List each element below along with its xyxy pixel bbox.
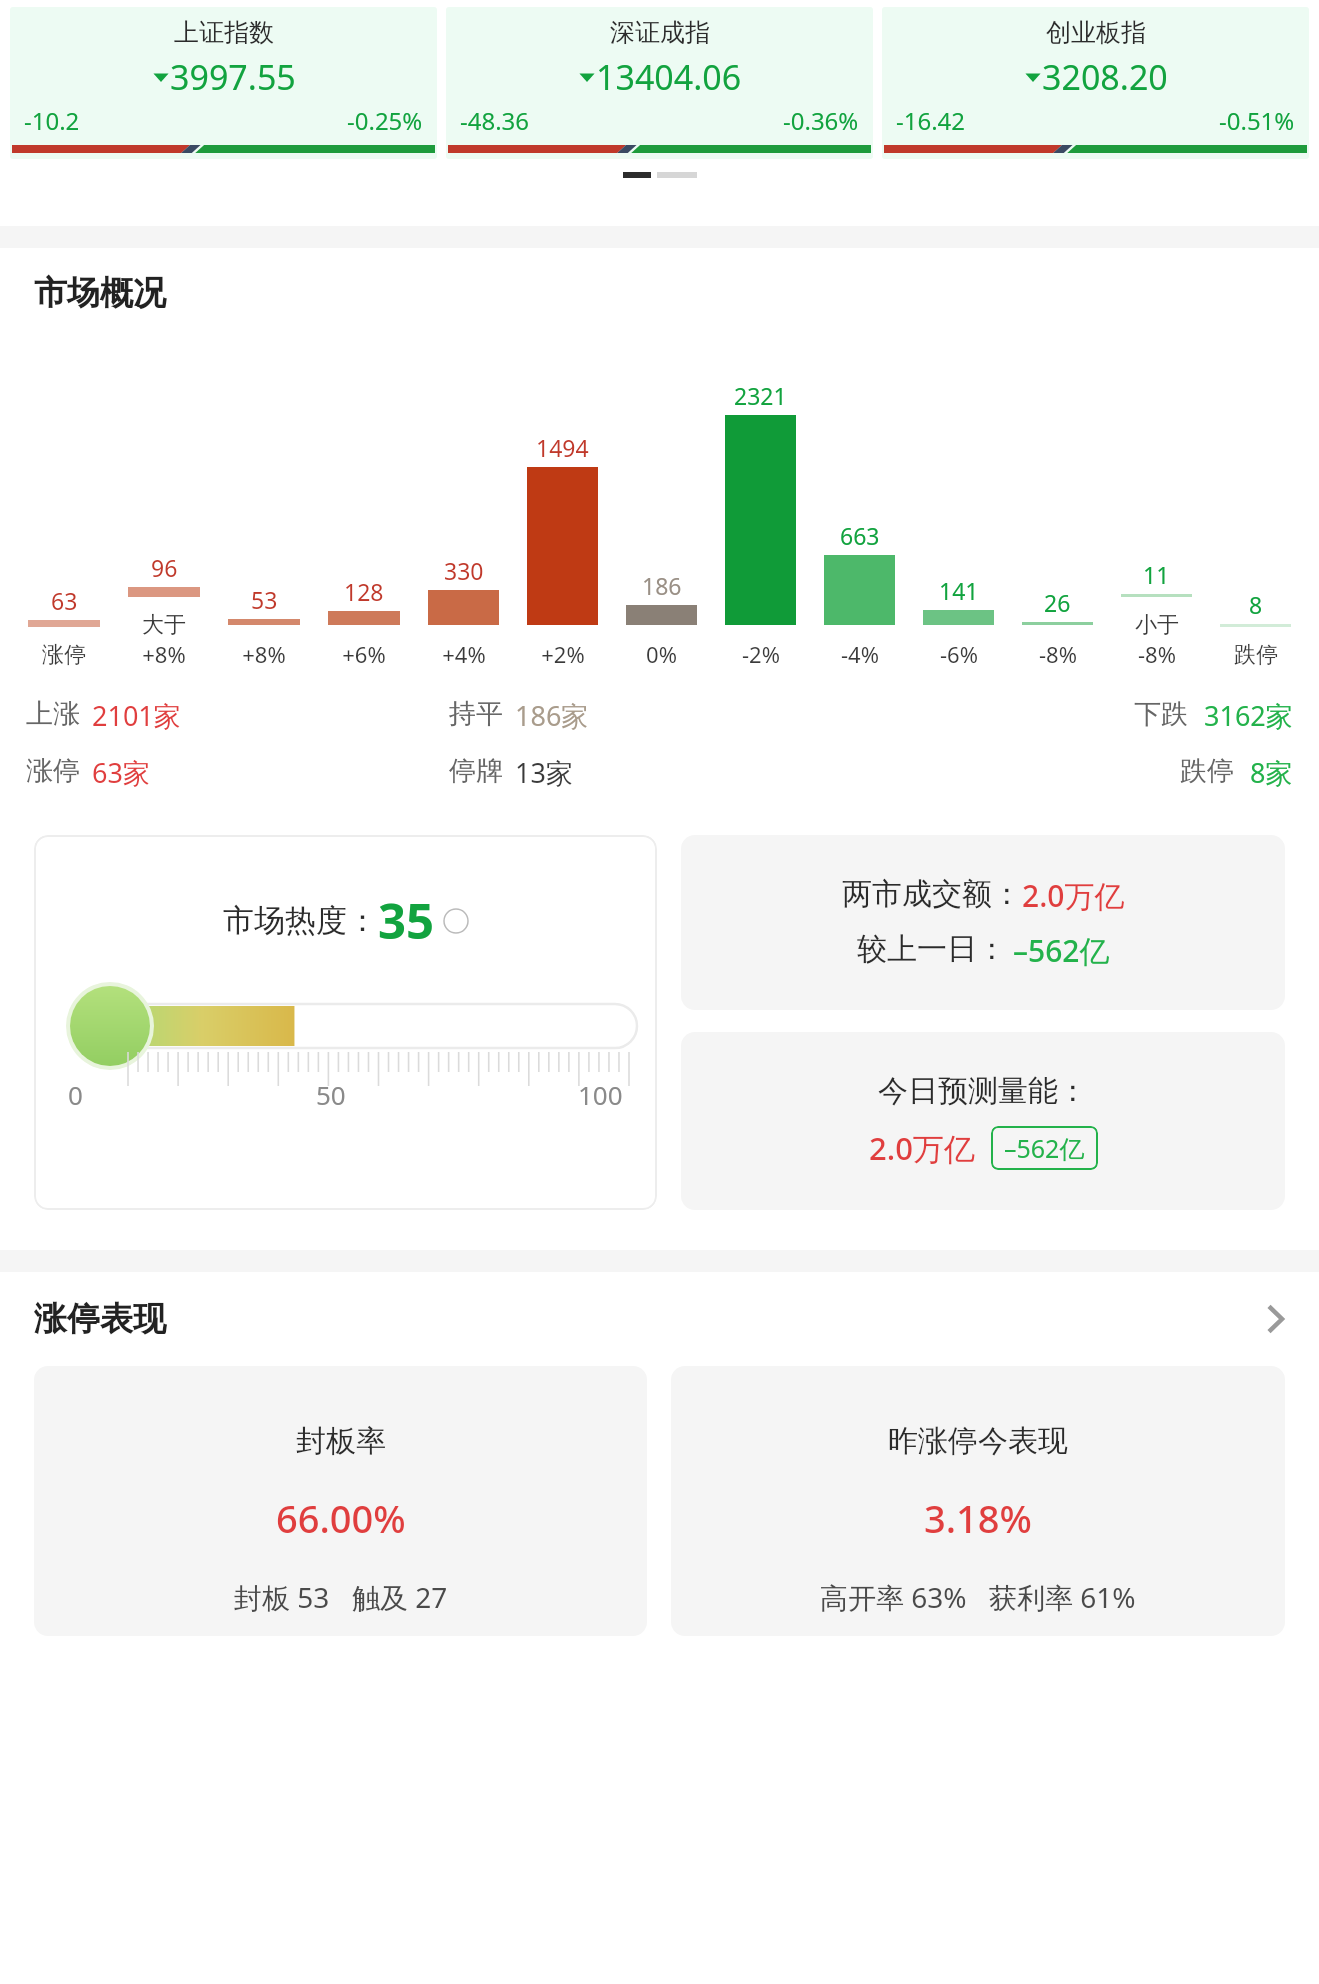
staticText: 3162家 [1204,697,1293,734]
staticText: 141 [939,575,979,606]
staticText: 13家 [515,754,573,791]
staticText: 2.0万亿 [869,1127,975,1169]
staticText: 上涨 [26,697,80,731]
staticText: 涨停 [42,641,86,669]
staticText: 100 [578,1077,623,1112]
staticText: +4% [442,639,486,669]
button[interactable]: 封板率 [34,1366,647,1636]
other: 帮助 [443,908,469,934]
staticText: -0.25% [347,104,423,137]
staticText: 63 [51,585,78,616]
staticText: 两市成交额： [842,875,1022,913]
staticText: 50 [316,1077,346,1112]
button[interactable]: 今日预测量能： [681,1032,1285,1210]
staticText: 186 [642,570,682,601]
staticText: +2% [541,639,585,669]
staticText: 3208.20 [1042,54,1168,100]
staticText: 昨涨停今表现 [888,1422,1068,1460]
staticText: -10.2 [24,104,80,137]
staticText: 涨停表现 [34,1298,166,1340]
staticText: 3.18% [924,1492,1032,1544]
staticText: 8 [1249,589,1263,620]
staticText: +6% [342,639,386,669]
button[interactable]: 上证指数 [10,7,437,159]
staticText: 跌停 [1180,754,1234,788]
staticText: 停牌 [449,754,503,788]
staticText: -0.51% [1219,104,1295,137]
staticText: 2.0万亿 [1022,875,1125,916]
staticText: -8% [1138,639,1176,669]
staticText: 持平 [449,697,503,731]
staticText: 跌停 [1234,641,1278,669]
staticText: 封板率 [296,1422,386,1460]
staticText: –562亿 [1004,1131,1085,1165]
button[interactable]: 两市成交额： [681,835,1285,1010]
staticText: 获利率 61% [989,1578,1136,1616]
button[interactable]: 涨停表现 [0,1298,1319,1340]
staticText: 上证指数 [174,17,274,48]
staticText: –562亿 [1013,930,1110,971]
staticText: 下跌 [1134,697,1188,731]
staticText: 大于 [142,611,186,639]
staticText: 186家 [515,697,589,734]
staticText: 深证成指 [610,17,710,48]
staticText: 创业板指 [1046,17,1146,48]
staticText: 1494 [536,432,589,463]
button[interactable]: 深证成指 [446,7,873,159]
button[interactable]: 昨涨停今表现 [671,1366,1285,1636]
staticText: -8% [1039,639,1077,669]
staticText: 2321 [734,380,787,411]
staticText: 8家 [1250,754,1293,791]
staticText: 市场热度： [223,901,378,940]
staticText: 小于 [1135,611,1179,639]
button[interactable]: 创业板指 [882,7,1309,159]
staticText: 53 [251,584,278,615]
staticText: 26 [1044,587,1071,618]
staticText: 市场概况 [34,272,166,314]
staticText: -48.36 [460,104,530,137]
staticText: 涨停 [26,754,80,788]
staticText: 35 [378,887,435,954]
staticText: 触及 27 [352,1578,448,1616]
staticText: 330 [444,555,484,586]
staticText: 0% [646,639,677,669]
staticText: 今日预测量能： [878,1072,1088,1110]
staticText: 11 [1143,559,1170,590]
staticText: -2% [742,639,780,669]
staticText: 较上一日： [857,930,1007,968]
button[interactable]: 市场热度： [34,835,657,1210]
staticText: 3997.55 [170,54,296,100]
staticText: 13404.06 [596,54,742,100]
staticText: +8% [142,639,186,669]
other: 更多 [1265,1302,1285,1336]
staticText: -6% [940,639,978,669]
staticText: +8% [242,639,286,669]
staticText: -16.42 [896,104,966,137]
staticText: -0.36% [783,104,859,137]
staticText: 128 [344,576,384,607]
staticText: 封板 53 [234,1578,330,1616]
staticText: 96 [151,552,178,583]
staticText: 66.00% [276,1492,406,1544]
staticText: -4% [841,639,879,669]
staticText: 0 [68,1077,83,1112]
staticText: 2101家 [92,697,181,734]
staticText: 高开率 63% [820,1578,967,1616]
staticText: 663 [840,520,880,551]
staticText: 63家 [92,754,150,791]
